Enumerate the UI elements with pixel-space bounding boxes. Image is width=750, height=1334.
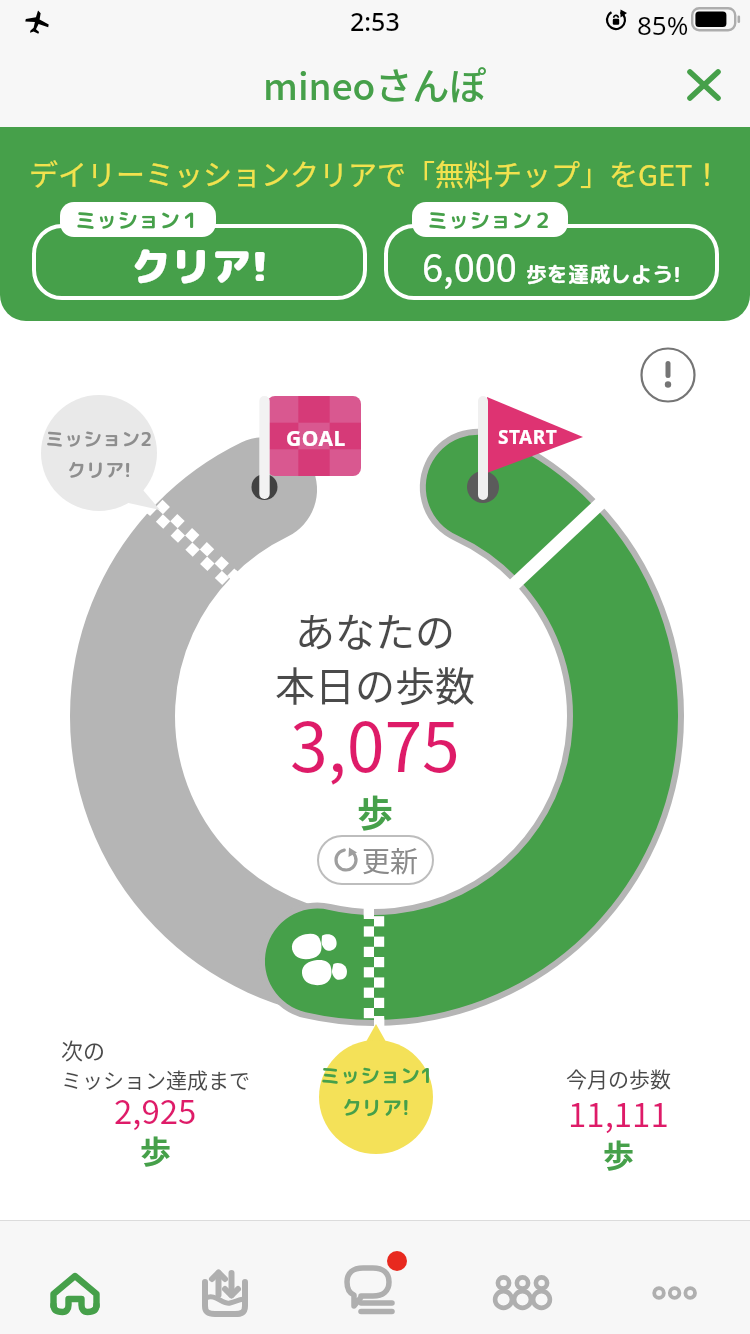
button[interactable]: Home <box>0 1220 150 1334</box>
button[interactable]: 更新 <box>317 835 434 885</box>
staticText: 歩 <box>357 785 394 837</box>
button[interactable]: Services <box>450 1220 600 1334</box>
staticText: 歩を達成しよう! <box>526 259 681 288</box>
staticText: mineoさんぽ <box>263 57 487 111</box>
staticText: あなたの <box>295 601 455 659</box>
button[interactable]: クリア! <box>32 202 367 300</box>
staticText: 歩 <box>140 1127 171 1172</box>
staticText: 2:53 <box>350 4 400 38</box>
button[interactable]: More <box>600 1220 750 1334</box>
button[interactable]: Data usage <box>150 1220 300 1334</box>
staticText: クリア! <box>67 457 132 484</box>
button[interactable]: Close <box>673 54 735 116</box>
staticText: ミッション１ <box>75 205 201 234</box>
staticText: 3,075 <box>290 693 460 791</box>
staticText: クリア! <box>342 1093 410 1121</box>
button[interactable]: 6,000 <box>384 202 719 300</box>
staticText: 更新 <box>362 840 419 881</box>
button[interactable]: Information <box>641 348 695 402</box>
staticText: START <box>498 424 558 450</box>
staticText: 2,925 <box>114 1086 197 1134</box>
staticText: ミッション２ <box>427 205 553 234</box>
staticText: 11,111 <box>568 1089 669 1137</box>
staticText: ミッション達成まで <box>61 1064 250 1094</box>
staticText: クリア! <box>131 238 269 294</box>
staticText: GOAL <box>286 424 346 453</box>
staticText: ミッション2 <box>45 426 153 453</box>
staticText: 本日の歩数 <box>275 655 475 713</box>
staticText: 歩 <box>603 1131 634 1176</box>
staticText: 次の <box>61 1033 106 1065</box>
staticText: 6,000 <box>422 238 517 293</box>
staticText: 85% <box>637 7 689 42</box>
button[interactable]: Messages <box>300 1220 450 1334</box>
staticText: 今月の歩数 <box>566 1063 671 1093</box>
staticText: デイリーミッションクリアで「無料チップ」をGET！ <box>29 152 722 194</box>
staticText: ミッション1 <box>320 1061 433 1089</box>
